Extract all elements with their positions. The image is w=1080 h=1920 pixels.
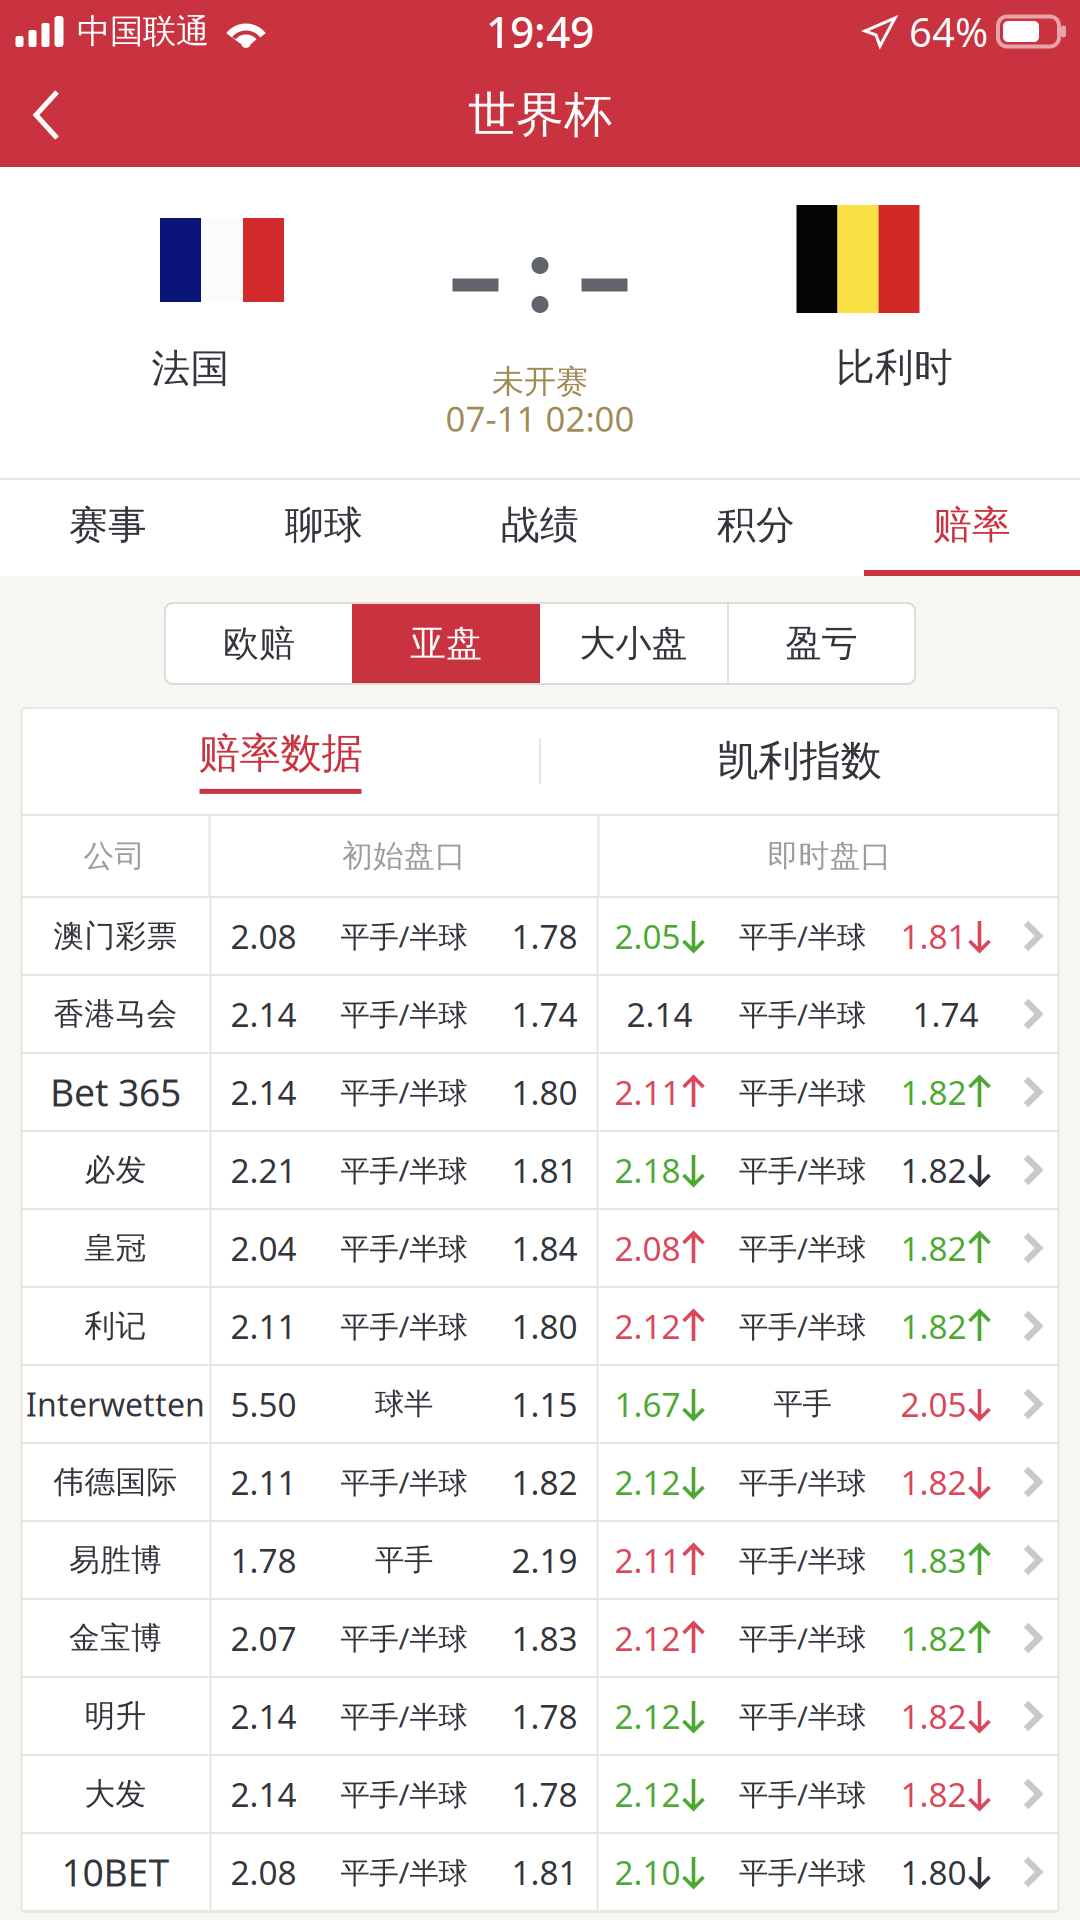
staticText: 1.82 xyxy=(900,1694,966,1738)
staticText: 球半 xyxy=(375,1386,433,1422)
staticText: 赛事 xyxy=(69,501,147,549)
staticText: 2.08 xyxy=(230,914,296,958)
staticText: 19:49 xyxy=(486,3,594,60)
staticText: 2.11 xyxy=(230,1304,296,1348)
staticText: 初始盘口 xyxy=(342,837,466,875)
staticText: 平手/半球 xyxy=(739,1618,866,1657)
button[interactable]: 皇冠 xyxy=(21,1210,1058,1286)
staticText: 赔率 xyxy=(933,501,1011,549)
staticText: 2.12 xyxy=(614,1460,680,1504)
staticText: 金宝博 xyxy=(69,1619,162,1657)
staticText: 香港马会 xyxy=(53,995,177,1033)
button[interactable]: Bet 365 xyxy=(21,1054,1058,1130)
staticText: 1.84 xyxy=(511,1226,577,1270)
staticText: 2.12 xyxy=(614,1772,680,1816)
staticText: 平手/半球 xyxy=(340,1618,467,1657)
staticText: 10BET xyxy=(61,1847,169,1897)
staticText: 2.11 xyxy=(614,1538,680,1582)
staticText: 平手/半球 xyxy=(340,1696,467,1735)
button[interactable]: 大小盘 xyxy=(540,603,727,684)
staticText: 战绩 xyxy=(501,501,579,549)
staticText: 聊球 xyxy=(285,501,363,549)
staticText: 平手/半球 xyxy=(340,1072,467,1111)
staticText: 1.82 xyxy=(900,1148,966,1192)
button[interactable]: 明升 xyxy=(21,1678,1058,1754)
staticText: 大小盘 xyxy=(579,621,687,666)
staticText: 5.50 xyxy=(230,1382,296,1426)
button[interactable]: 欧赔 xyxy=(166,603,352,684)
staticText: 平手/半球 xyxy=(340,1852,467,1891)
staticText: 1.81 xyxy=(511,1148,577,1192)
button[interactable]: 大发 xyxy=(21,1756,1058,1832)
button[interactable]: 亚盘 xyxy=(352,603,540,684)
staticText: 平手/半球 xyxy=(340,1150,467,1189)
staticText: 平手/半球 xyxy=(739,1306,866,1345)
staticText: 平手/半球 xyxy=(739,1150,866,1189)
staticText: 1.82 xyxy=(511,1460,577,1504)
staticText: 澳门彩票 xyxy=(53,917,177,955)
staticText: 平手/半球 xyxy=(739,1462,866,1501)
button[interactable]: 香港马会 xyxy=(21,976,1058,1052)
button[interactable]: Interwetten xyxy=(21,1366,1058,1442)
staticText: 平手/半球 xyxy=(340,916,467,955)
staticText: 2.18 xyxy=(614,1148,680,1192)
staticText: 2.12 xyxy=(614,1616,680,1660)
button[interactable]: 金宝博 xyxy=(21,1600,1058,1676)
staticText: 64% xyxy=(909,5,988,58)
staticText: 1.81 xyxy=(900,914,966,958)
staticText: 1.82 xyxy=(900,1772,966,1816)
staticText: 1.80 xyxy=(900,1850,966,1894)
staticText: 1.74 xyxy=(511,992,577,1036)
button[interactable]: 易胜博 xyxy=(21,1522,1058,1598)
button[interactable]: 积分 xyxy=(648,480,864,576)
staticText: 平手/半球 xyxy=(739,1852,866,1891)
button[interactable]: 赔率数据 xyxy=(22,708,539,814)
staticText: 2.14 xyxy=(230,1070,296,1114)
staticText: 1.82 xyxy=(900,1460,966,1504)
staticText: 中国联通 xyxy=(77,11,209,52)
staticText: 皇冠 xyxy=(84,1229,146,1267)
staticText: 大发 xyxy=(84,1775,146,1813)
button[interactable]: 必发 xyxy=(21,1132,1058,1208)
staticText: 2.07 xyxy=(230,1616,296,1660)
staticText: 2.12 xyxy=(614,1304,680,1348)
staticText: 平手/半球 xyxy=(340,994,467,1033)
button[interactable]: 10BET xyxy=(21,1834,1058,1910)
button[interactable]: 盈亏 xyxy=(729,603,914,684)
button[interactable]: 赛事 xyxy=(0,480,216,576)
button[interactable]: Back xyxy=(0,63,94,167)
staticText: 法国 xyxy=(151,345,229,392)
staticText: 1.80 xyxy=(511,1304,577,1348)
button[interactable]: 赔率 xyxy=(864,480,1080,576)
staticText: 盈亏 xyxy=(785,621,857,666)
button[interactable]: 凯利指数 xyxy=(541,708,1058,814)
staticText: 1.82 xyxy=(900,1304,966,1348)
staticText: 1.83 xyxy=(900,1538,966,1582)
button[interactable]: 澳门彩票 xyxy=(21,898,1058,974)
staticText: 2.08 xyxy=(230,1850,296,1894)
staticText: 比利时 xyxy=(836,344,953,391)
staticText: 1.67 xyxy=(614,1382,680,1426)
staticText: 亚盘 xyxy=(410,621,482,666)
button[interactable]: 战绩 xyxy=(432,480,648,576)
staticText: 凯利指数 xyxy=(717,736,881,786)
button[interactable]: 聊球 xyxy=(216,480,432,576)
staticText: 平手/半球 xyxy=(739,1228,866,1267)
button[interactable]: 利记 xyxy=(21,1288,1058,1364)
staticText: 必发 xyxy=(84,1151,146,1189)
staticText: 2.05 xyxy=(614,914,680,958)
button[interactable]: 伟德国际 xyxy=(21,1444,1058,1520)
staticText: 2.14 xyxy=(230,992,296,1036)
staticText: 平手/半球 xyxy=(340,1228,467,1267)
staticText: 平手/半球 xyxy=(340,1462,467,1501)
staticText: 1.74 xyxy=(912,992,978,1036)
staticText: 平手/半球 xyxy=(739,1774,866,1813)
staticText: 平手 xyxy=(375,1542,433,1578)
staticText: 2.11 xyxy=(614,1070,680,1114)
staticText: 2.14 xyxy=(230,1694,296,1738)
staticText: 平手/半球 xyxy=(340,1306,467,1345)
staticText: 利记 xyxy=(84,1307,146,1345)
staticText: 未开赛 xyxy=(492,362,588,401)
staticText: 1.78 xyxy=(511,914,577,958)
staticText: 2.14 xyxy=(626,992,692,1036)
